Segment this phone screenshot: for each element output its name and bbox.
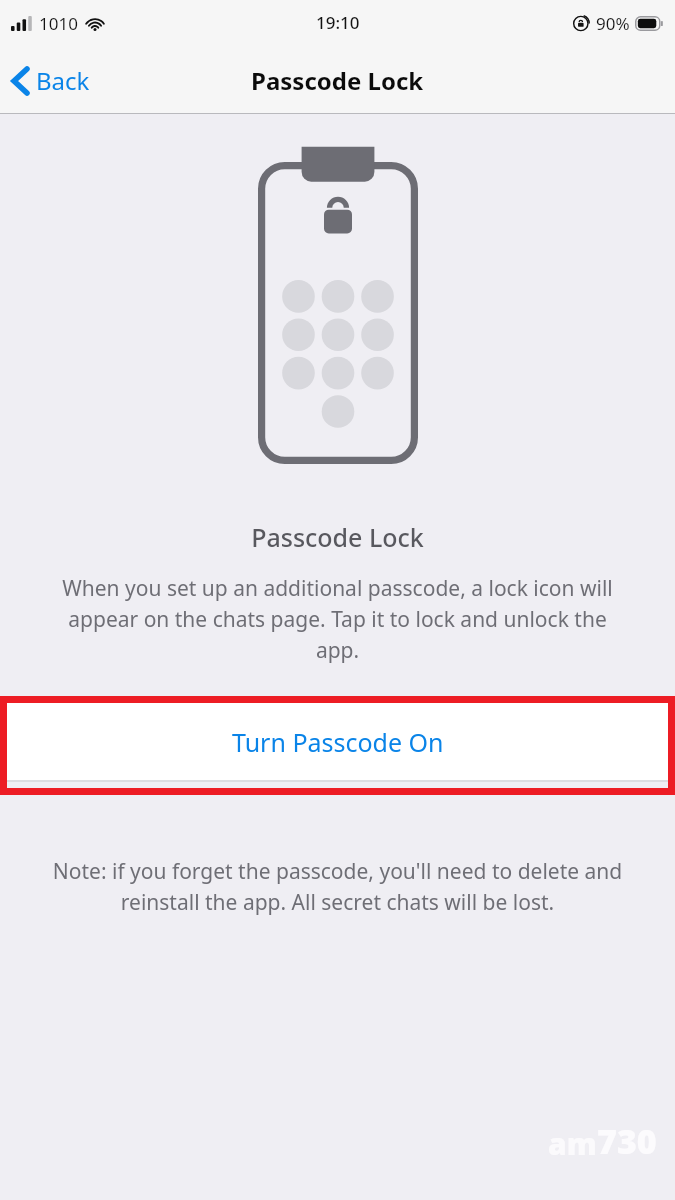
staticText: 90% [596, 12, 630, 35]
staticText: Note: if you forget the passcode, you'll… [48, 857, 627, 916]
staticText: 1010 [39, 12, 78, 35]
staticText: Turn Passcode On [232, 725, 444, 759]
button[interactable]: Back [0, 56, 104, 105]
staticText: 19:10 [316, 11, 360, 34]
staticText: When you set up an additional passcode, … [52, 574, 623, 664]
staticText: am [548, 1123, 597, 1164]
staticText: Back [36, 64, 90, 97]
staticText: 730 [597, 1118, 657, 1164]
staticText: Passcode Lock [0, 520, 675, 554]
button[interactable]: Turn Passcode On [7, 703, 668, 788]
staticText: Passcode Lock [251, 64, 424, 97]
